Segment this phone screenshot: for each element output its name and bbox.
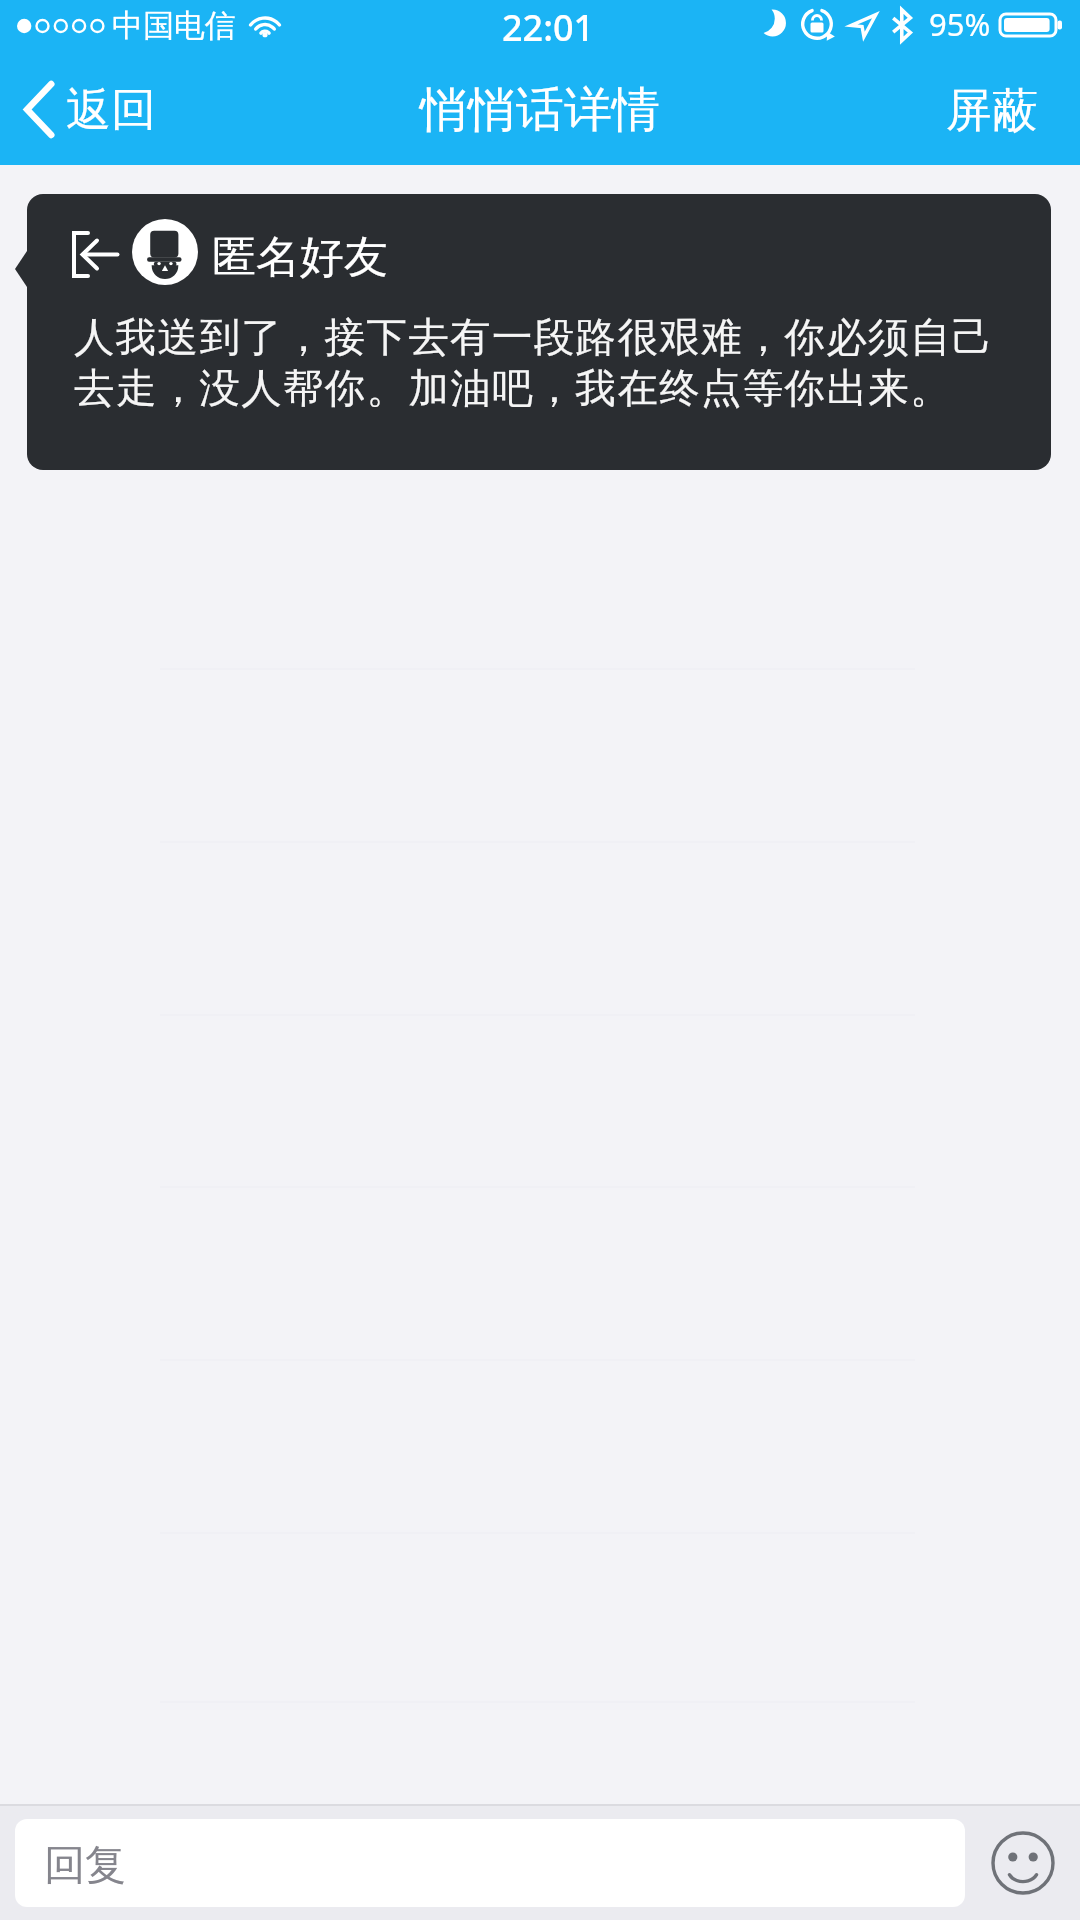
staticText: 匿名好友 [212,232,388,285]
staticText: 屏蔽 [946,89,1038,139]
staticText: 22:01 [502,11,595,49]
button[interactable]: Emoji [987,1827,1059,1899]
staticText: 中国电信 [112,11,236,45]
button[interactable]: 匿名好友 [27,194,1051,470]
staticText: 95% [929,10,991,43]
staticText: 返回 [66,89,156,137]
staticText: 悄悄话详情 [420,89,660,139]
staticText: 回复 [44,1845,126,1890]
button[interactable]: 返回 [0,58,178,168]
button[interactable]: 屏蔽 [920,59,1080,169]
button[interactable]: 回复 [15,1819,965,1907]
staticText: 人我送到了，接下去有一段路很艰难，你必须自己去走，没人帮你。加油吧，我在终点等你… [74,313,1014,415]
